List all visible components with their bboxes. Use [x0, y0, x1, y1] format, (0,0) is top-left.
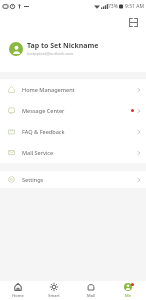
staticText: hnapptest@outlook.com: [27, 51, 74, 56]
button[interactable]: Mall: [72, 281, 109, 300]
button[interactable]: Mall Service: [0, 142, 146, 163]
button[interactable]: Smart: [36, 281, 72, 300]
button[interactable]: Scan QR code: [127, 16, 140, 29]
button[interactable]: FAQ & Feedback: [0, 121, 146, 142]
staticText: Settings: [22, 176, 44, 184]
staticText: Me: [125, 293, 131, 298]
button[interactable]: Home: [0, 281, 36, 300]
staticText: Home: [12, 293, 24, 298]
button[interactable]: Settings: [0, 171, 146, 188]
button[interactable]: Tap to Set Nickname: [9, 41, 99, 56]
staticText: FAQ & Feedback: [22, 128, 65, 136]
button[interactable]: Message Center: [0, 100, 146, 121]
staticText: Mall: [87, 293, 95, 298]
staticText: Tap to Set Nickname: [27, 41, 99, 51]
staticText: Mall Service: [22, 149, 54, 157]
staticText: Smart: [48, 293, 60, 298]
staticText: 73%: [108, 3, 118, 10]
staticText: Home Management: [22, 86, 75, 94]
staticText: 9:51 AM: [125, 3, 144, 10]
staticText: Message Center: [22, 107, 65, 115]
button[interactable]: Me: [109, 281, 146, 300]
button[interactable]: Home Management: [0, 79, 146, 100]
